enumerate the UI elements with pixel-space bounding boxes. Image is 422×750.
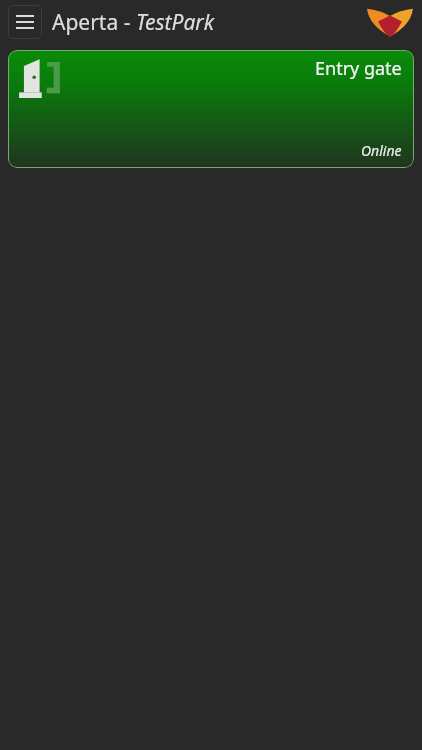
button[interactable]: Entry gate [8, 50, 414, 168]
staticText: Online [361, 141, 402, 160]
other: App logo [366, 5, 414, 39]
staticText: Aperta - TestPark [52, 8, 215, 37]
button[interactable]: Open navigation menu [8, 5, 42, 39]
staticText: Entry gate [315, 56, 402, 81]
